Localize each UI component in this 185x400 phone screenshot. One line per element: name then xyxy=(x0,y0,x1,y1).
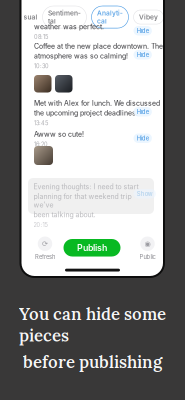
button[interactable]: Show xyxy=(133,189,156,198)
staticText: planning for that weekend trip we've xyxy=(33,192,131,209)
button[interactable]: Vibey xyxy=(133,10,163,24)
staticText: ◉ xyxy=(144,240,150,248)
button[interactable]: Hide xyxy=(133,133,152,143)
staticText: You can hide some pieces xyxy=(19,303,166,346)
staticText: Hide xyxy=(137,108,149,115)
staticText: 10:30 xyxy=(34,63,49,70)
staticText: the upcoming project deadlines. xyxy=(34,109,138,117)
button[interactable]: Publish xyxy=(63,239,120,256)
button[interactable]: Analytical xyxy=(91,6,128,28)
staticText: Publish xyxy=(77,242,107,253)
button[interactable]: Hide xyxy=(133,26,152,35)
button[interactable]: Hide xyxy=(133,107,152,116)
staticText: Analytical xyxy=(97,9,123,25)
staticText: 08:15 xyxy=(34,33,48,40)
staticText: weather was perfect. xyxy=(34,22,104,31)
staticText: Vibey xyxy=(139,13,158,21)
staticText: Hide xyxy=(137,27,149,34)
staticText: Coffee at the new place downtown. The xyxy=(34,42,163,50)
staticText: before publishing xyxy=(23,351,162,372)
button[interactable]: Refresh xyxy=(33,236,57,260)
staticText: Met with Alex for lunch. We discussed xyxy=(34,99,160,107)
staticText: ⟳ xyxy=(42,240,48,248)
staticText: Public xyxy=(139,253,155,260)
staticText: Awww so cute! xyxy=(34,130,84,138)
button[interactable]: Public xyxy=(135,236,159,260)
button[interactable]: Sentimental xyxy=(42,6,86,28)
staticText: Sentimental xyxy=(48,9,81,25)
staticText: sual xyxy=(23,13,37,21)
staticText: Hide xyxy=(137,135,149,142)
staticText: Refresh xyxy=(35,253,55,260)
button[interactable]: Hide xyxy=(133,50,152,59)
staticText: atmosphere was so calming! xyxy=(34,52,128,60)
staticText: 16:20 xyxy=(34,141,48,148)
staticText: Evening thoughts: I need to start xyxy=(33,182,138,191)
staticText: Hide xyxy=(137,51,149,58)
staticText: Show xyxy=(137,190,153,197)
staticText: been talking about. xyxy=(33,210,95,219)
staticText: 13:45 xyxy=(34,120,48,127)
staticText: 20:15 xyxy=(33,221,47,228)
